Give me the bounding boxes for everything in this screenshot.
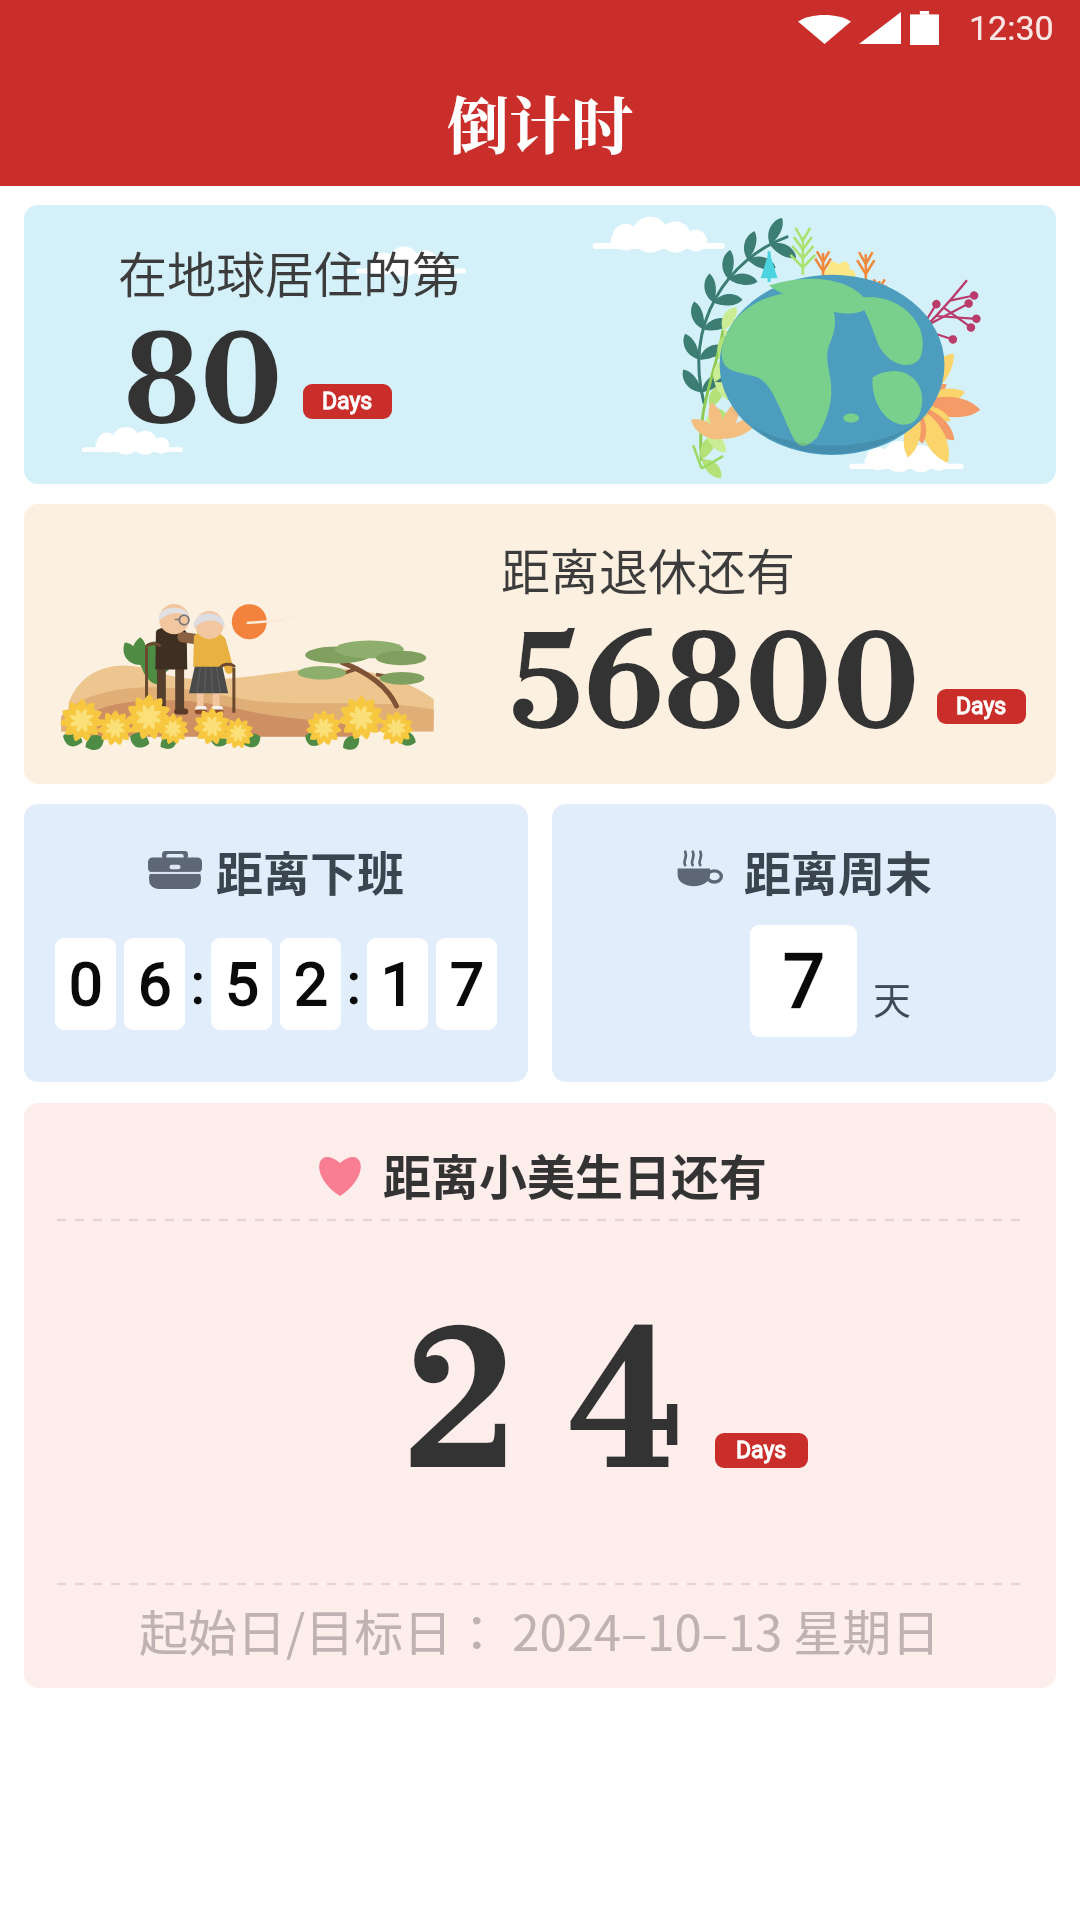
button[interactable]: 距离退休还有 56800 Days [24, 504, 1056, 784]
staticText: 5 [225, 949, 259, 1019]
button[interactable]: 距离小美生日还有 24 Days [24, 1103, 1056, 1688]
staticText: Days [956, 693, 1007, 720]
staticText: 12:30 [969, 8, 1054, 48]
staticText: 倒计时 [447, 78, 634, 167]
staticText: 1 [381, 949, 415, 1019]
staticText: 距离周末 [744, 836, 932, 904]
button[interactable]: 在地球居住的第 80 Days [24, 205, 1056, 484]
staticText: 距离小美生日还有 [383, 1139, 768, 1209]
staticText: 起始日/目标日： 2024–10–13 星期日 [139, 1594, 941, 1665]
staticText: Days [736, 1437, 787, 1464]
staticText: 80 [125, 310, 285, 460]
staticText: Days [322, 388, 373, 415]
staticText: 6 [138, 949, 172, 1019]
staticText: 距离下班 [216, 836, 404, 904]
staticText: 2 [294, 949, 328, 1019]
staticText: 0 [69, 949, 103, 1019]
staticText: 在地球居住的第 [118, 236, 462, 307]
button[interactable]: 距离下班 06:52:17 [24, 804, 528, 1082]
staticText: 56800 [511, 608, 922, 767]
button[interactable]: 距离周末 7 天 [552, 804, 1056, 1082]
staticText: 24 [407, 1293, 737, 1524]
staticText: : [347, 951, 361, 1017]
staticText: 距离退休还有 [501, 533, 796, 604]
staticText: 7 [783, 938, 825, 1025]
staticText: 7 [450, 949, 484, 1019]
staticText: 天 [873, 970, 912, 1025]
staticText: : [191, 951, 205, 1017]
